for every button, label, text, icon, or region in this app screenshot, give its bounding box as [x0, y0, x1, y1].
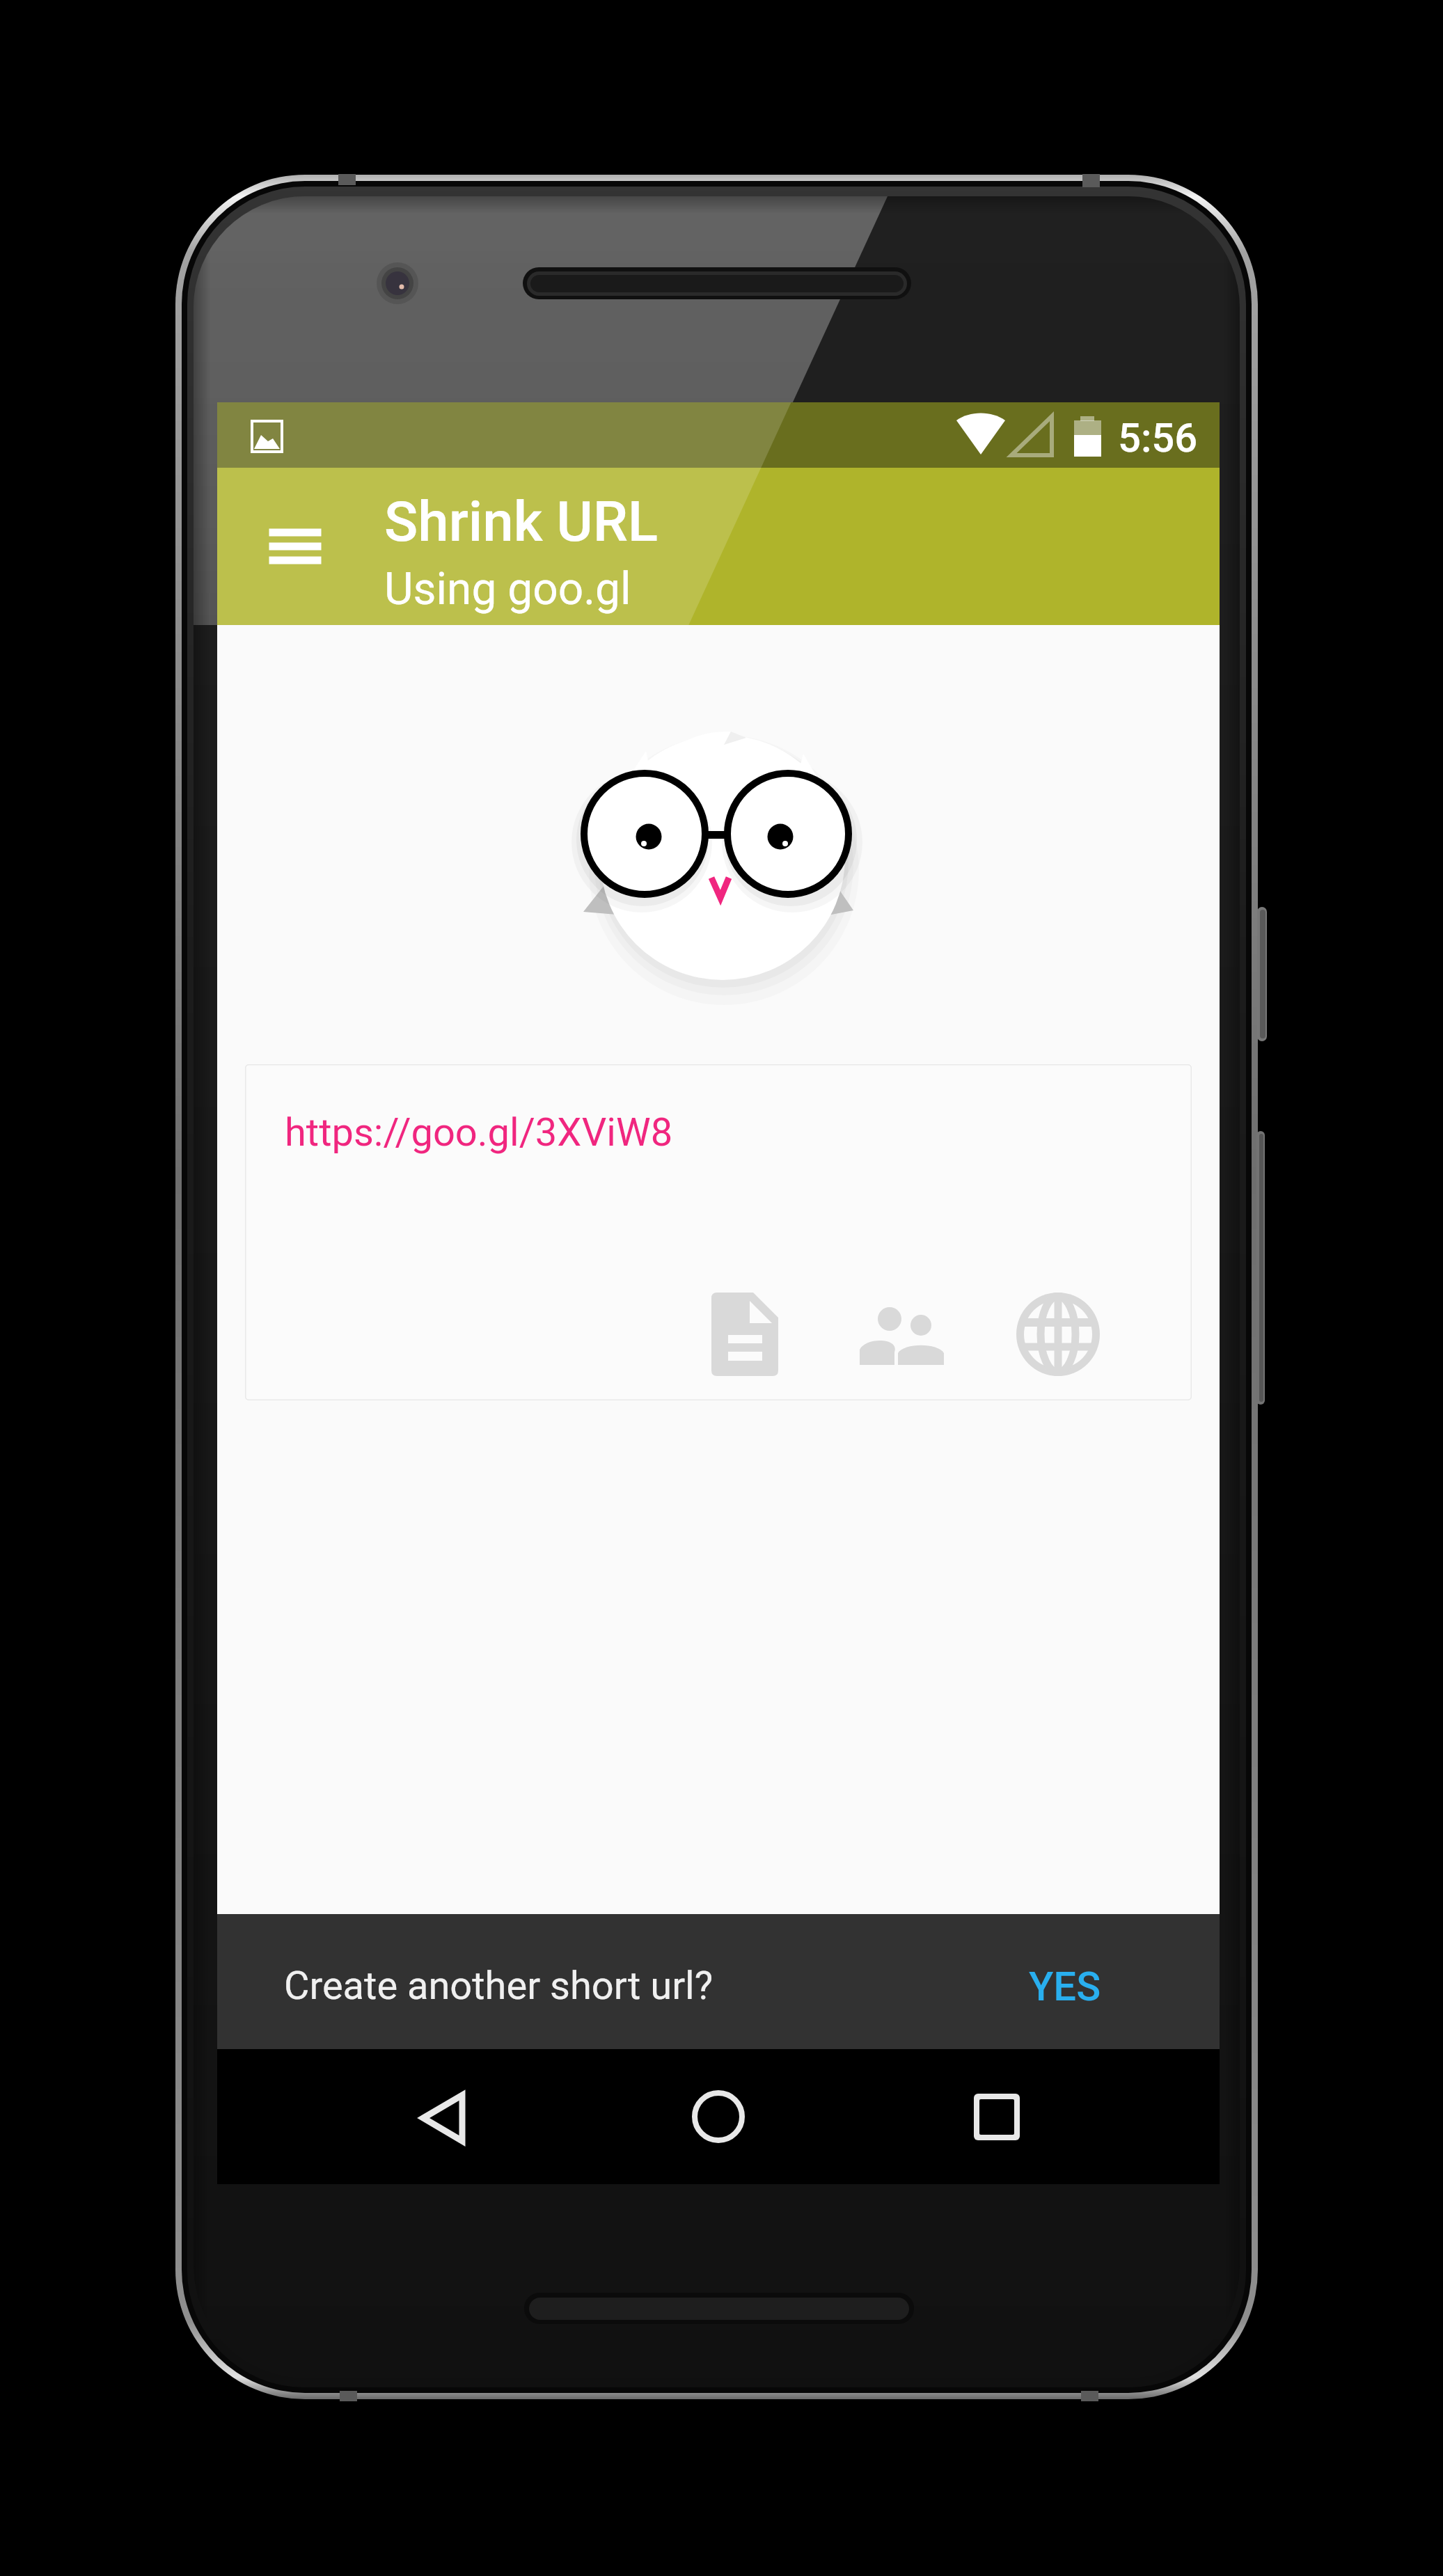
staticText: https://goo.gl/3XViW8 [285, 1109, 673, 1155]
button[interactable]: Open navigation drawer [251, 507, 340, 585]
staticText: Using goo.gl [384, 563, 631, 615]
button[interactable]: Copy short url [700, 1289, 790, 1380]
button[interactable]: Share short url [856, 1289, 947, 1380]
button[interactable]: https://goo.gl/3XViW8 [262, 1085, 694, 1167]
button[interactable]: Back [394, 2068, 491, 2165]
staticText: YES [1029, 1963, 1101, 2010]
staticText: 5:56 [1118, 414, 1198, 461]
button[interactable]: Recent apps [948, 2068, 1046, 2165]
staticText: Shrink URL [384, 489, 658, 555]
button[interactable]: YES [1001, 1934, 1127, 2038]
staticText: Create another short url? [284, 1963, 713, 2009]
button[interactable]: Home [670, 2068, 767, 2165]
button[interactable]: Open short url in browser [1013, 1289, 1103, 1380]
